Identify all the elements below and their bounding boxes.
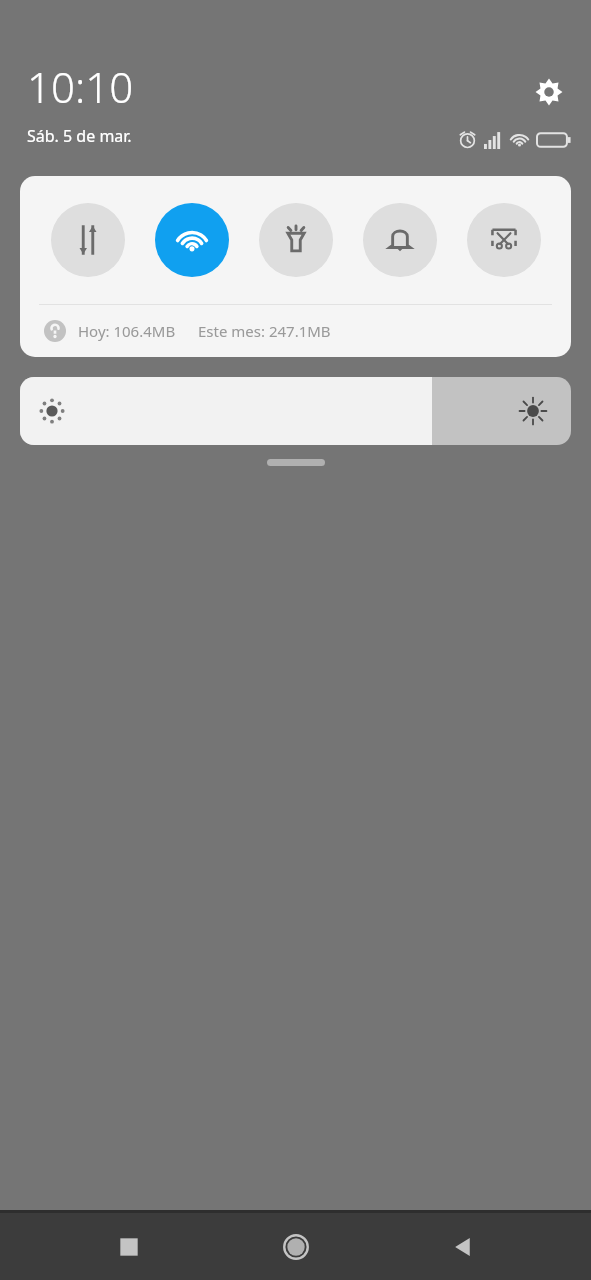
button[interactable]: Recents <box>100 1218 158 1276</box>
staticText: Este mes: 247.1MB <box>198 321 331 341</box>
button[interactable]: Silent mode <box>363 203 437 277</box>
button[interactable]: Wi-Fi <box>155 203 229 277</box>
button[interactable]: Screenshot <box>467 203 541 277</box>
button[interactable]: Flashlight <box>259 203 333 277</box>
button[interactable]: Mobile data <box>51 203 125 277</box>
staticText: 10:10 <box>27 58 134 115</box>
button[interactable]: Home <box>267 1218 325 1276</box>
staticText: Sáb. 5 de mar. <box>27 125 132 147</box>
button[interactable]: Brightness <box>20 377 571 445</box>
staticText: Hoy: 106.4MB <box>78 321 176 341</box>
button[interactable]: Settings <box>529 72 569 112</box>
button[interactable]: Back <box>434 1218 492 1276</box>
